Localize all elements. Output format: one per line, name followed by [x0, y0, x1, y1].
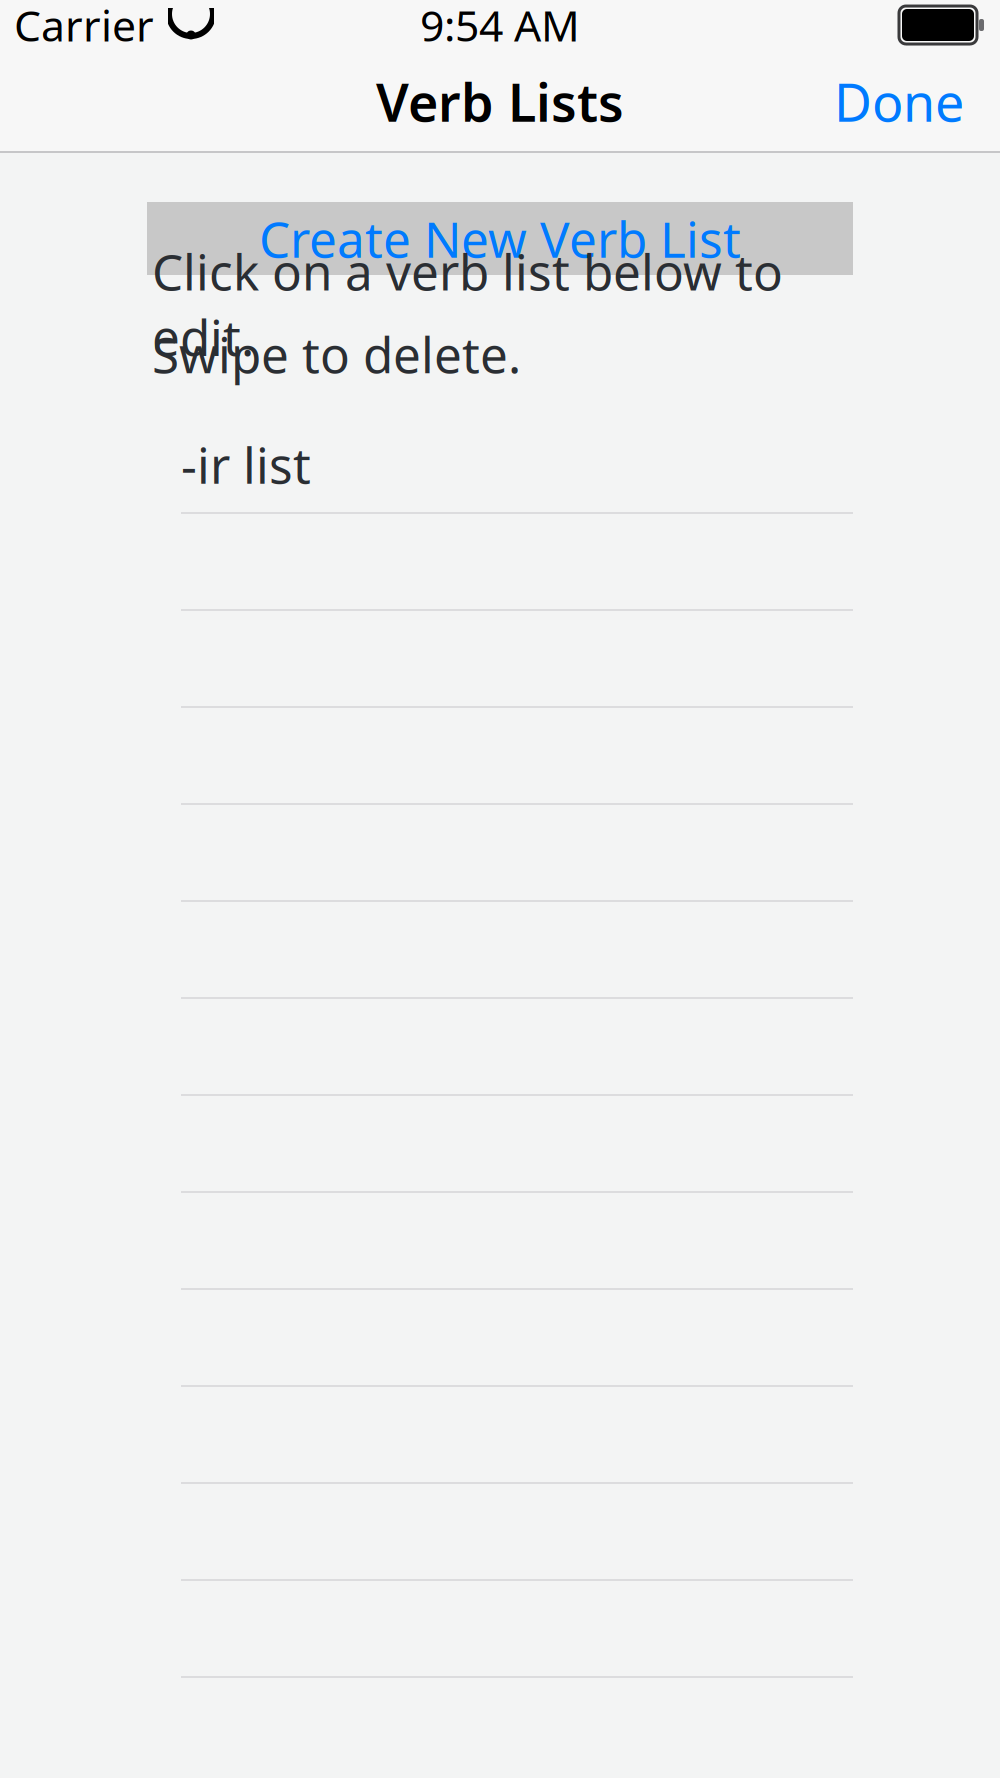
- staticText: Carrier: [14, 0, 154, 53]
- button[interactable]: Create New Verb List: [147, 202, 853, 275]
- staticText: Click on a verb list below to edit.: [152, 238, 783, 369]
- button[interactable]: [147, 1581, 853, 1678]
- button[interactable]: [147, 514, 853, 611]
- button[interactable]: [147, 902, 853, 999]
- button[interactable]: [147, 1193, 853, 1290]
- button[interactable]: Done: [816, 55, 982, 148]
- button[interactable]: [147, 1387, 853, 1484]
- button[interactable]: [147, 1290, 853, 1387]
- staticText: -ir list: [181, 432, 311, 497]
- staticText: Verb Lists: [376, 67, 624, 136]
- button[interactable]: [147, 708, 853, 805]
- staticText: Done: [834, 67, 964, 136]
- staticText: Swipe to delete.: [152, 321, 521, 387]
- button[interactable]: [147, 805, 853, 902]
- button[interactable]: [147, 1096, 853, 1193]
- button[interactable]: -ir list: [147, 417, 853, 514]
- button[interactable]: [147, 611, 853, 708]
- button[interactable]: [147, 1484, 853, 1581]
- staticText: Create New Verb List: [259, 206, 741, 271]
- staticText: 9:54 AM: [420, 0, 580, 53]
- button[interactable]: [147, 999, 853, 1096]
